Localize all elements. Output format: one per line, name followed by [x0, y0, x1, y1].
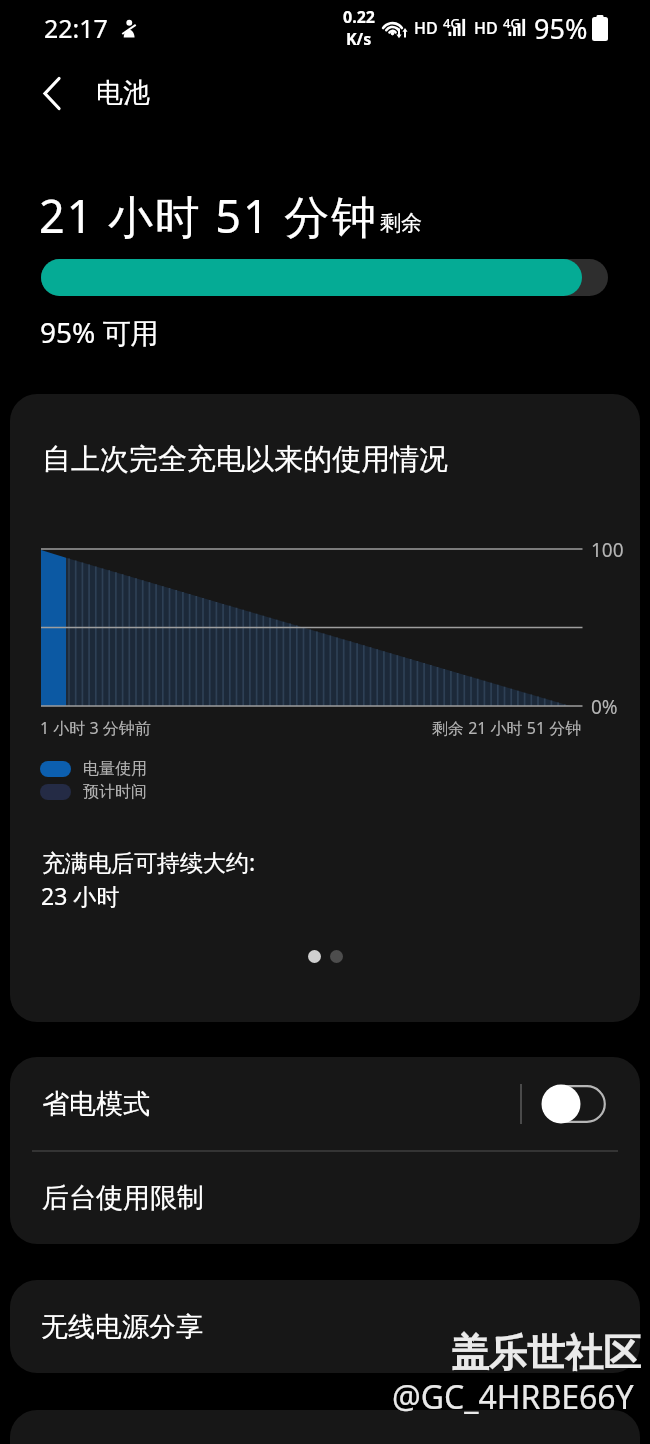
- staticText: 电池: [96, 76, 150, 110]
- staticText: 95%: [534, 10, 588, 47]
- staticText: 剩余: [380, 210, 422, 236]
- staticText: 自上次完全充电以来的使用情况: [42, 441, 448, 478]
- button[interactable]: Back: [28, 69, 76, 117]
- staticText: HD: [474, 17, 498, 39]
- staticText: 0%: [591, 694, 618, 720]
- staticText: 4G: [503, 14, 520, 32]
- staticText: K/s: [346, 28, 372, 50]
- staticText: 电量使用: [83, 759, 147, 779]
- staticText: 95% 可用: [40, 313, 159, 351]
- button[interactable]: Power saving mode toggle: [532, 1079, 616, 1129]
- staticText: 21 小时 51 分钟: [39, 185, 378, 246]
- button[interactable]: 省电模式: [10, 1057, 640, 1150]
- button[interactable]: 后台使用限制: [10, 1151, 640, 1244]
- button[interactable]: 无线电源分享: [10, 1280, 640, 1373]
- staticText: 1 小时 3 分钟前: [40, 717, 151, 739]
- staticText: 后台使用限制: [42, 1181, 204, 1215]
- staticText: @GC_4HRBE66Y: [392, 1375, 634, 1419]
- staticText: 充满电后可持续大约:: [42, 846, 256, 877]
- staticText: 无线电源分享: [41, 1310, 203, 1344]
- staticText: 预计时间: [83, 782, 147, 802]
- staticText: 22:17: [44, 11, 108, 45]
- staticText: HD: [414, 17, 438, 39]
- button[interactable]: [10, 1410, 640, 1444]
- staticText: 0.22: [343, 6, 375, 28]
- staticText: 盖乐世社区: [451, 1329, 641, 1377]
- staticText: 省电模式: [42, 1087, 150, 1121]
- staticText: 23 小时: [41, 880, 120, 911]
- staticText: 4G: [443, 14, 460, 32]
- staticText: 100: [591, 537, 624, 563]
- staticText: 剩余 21 小时 51 分钟: [432, 717, 582, 739]
